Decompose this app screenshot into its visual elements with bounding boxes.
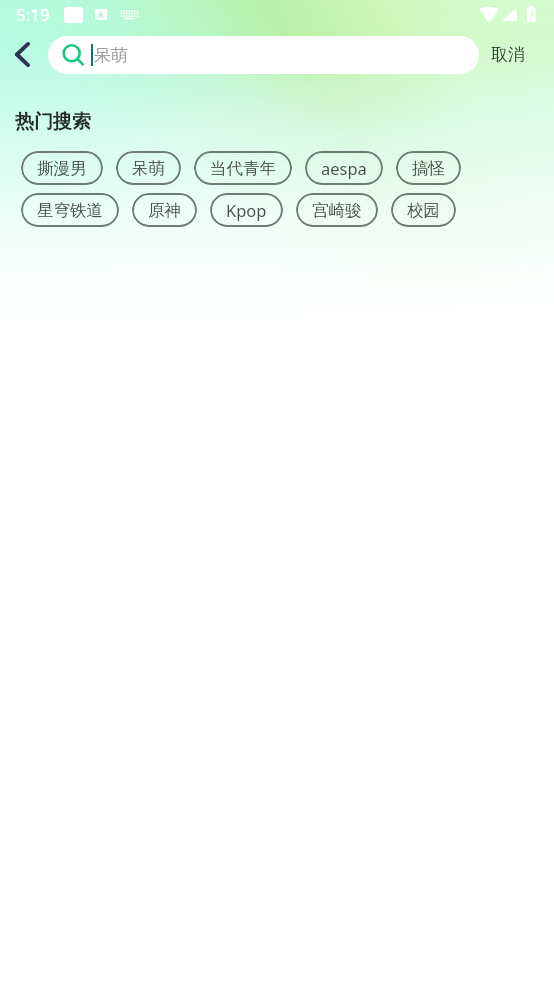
button[interactable]: 当代青年 <box>194 151 292 185</box>
button[interactable]: Kpop <box>210 193 283 227</box>
staticText: 校园 <box>407 200 440 221</box>
staticText: Kpop <box>226 199 267 221</box>
staticText: 5:19 <box>16 3 50 26</box>
button[interactable]: 呆萌 <box>48 36 479 74</box>
button[interactable]: 呆萌 <box>116 151 181 185</box>
staticText: A <box>98 9 104 20</box>
button[interactable]: 校园 <box>391 193 456 227</box>
button[interactable]: 星穹铁道 <box>21 193 119 227</box>
button[interactable]: aespa <box>305 151 383 185</box>
staticText: 呆萌 <box>94 45 128 66</box>
button[interactable]: 取消 <box>477 28 554 81</box>
button[interactable]: 搞怪 <box>396 151 461 185</box>
staticText: 热门搜索 <box>15 110 91 134</box>
staticText: 搞怪 <box>412 158 445 179</box>
staticText: aespa <box>321 157 367 179</box>
staticText: 星穹铁道 <box>37 200 103 221</box>
button[interactable]: 撕漫男 <box>21 151 103 185</box>
staticText: 呆萌 <box>132 158 165 179</box>
button[interactable]: 原神 <box>132 193 197 227</box>
staticText: 撕漫男 <box>37 158 87 179</box>
staticText: 原神 <box>148 200 181 221</box>
button[interactable]: 宫崎骏 <box>296 193 378 227</box>
button[interactable]: Back <box>0 28 44 81</box>
staticText: 宫崎骏 <box>312 200 362 221</box>
staticText: 取消 <box>491 44 525 65</box>
staticText: 当代青年 <box>210 158 276 179</box>
